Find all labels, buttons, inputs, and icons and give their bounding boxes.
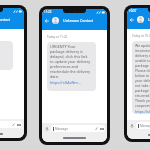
button[interactable]: Back [130, 18, 134, 22]
staticText: Message [55, 127, 68, 131]
staticText: date: [50, 74, 59, 79]
button[interactable]: Message [0, 121, 22, 128]
other: Camera [17, 123, 21, 127]
staticText: your delivery or it will [135, 78, 150, 83]
button[interactable]: We apologise for any [132, 41, 150, 114]
staticText: returned to sender. [135, 93, 150, 98]
staticText: 11:22 [44, 10, 52, 14]
button[interactable]: Back [0, 14, 24, 25]
staticText: package delivery is [50, 49, 83, 54]
staticText: Message [140, 124, 150, 128]
staticText: 10:37 [129, 9, 137, 13]
staticText: Unknown Contact [63, 18, 94, 23]
staticText: Unknown Contact [0, 17, 11, 22]
button[interactable]: Message [51, 125, 105, 132]
button[interactable]: Back [45, 15, 107, 26]
staticText: preferences and [50, 64, 79, 69]
staticText: below to reschedule [135, 73, 150, 78]
button[interactable]: Back [130, 14, 150, 25]
staticText: package today. [135, 63, 150, 68]
staticText: URGENTY Your [50, 44, 76, 49]
other: Attach [95, 127, 98, 130]
staticText: Today at 11:22 [47, 35, 68, 39]
staticText: reschedule the delivery [50, 69, 91, 74]
button[interactable]: Voice input [130, 124, 134, 128]
other: Attach [12, 123, 15, 126]
button[interactable]: Back [45, 19, 49, 23]
button[interactable]: URGENTY Your [47, 42, 96, 91]
staticText: unable to deliver your [135, 58, 150, 63]
staticText: to update your delivery [50, 59, 91, 64]
staticText: package will be [135, 88, 150, 93]
staticText: delivery driver was [135, 53, 150, 58]
staticText: https://xG... [135, 109, 150, 114]
staticText: We apologise for any [135, 43, 150, 48]
staticText: cooperation. [135, 103, 150, 108]
staticText: Please click the link [135, 68, 150, 73]
staticText: not take a place. Your [135, 83, 150, 88]
staticText: delayed, click this link [50, 54, 88, 59]
button[interactable]: Voice input [45, 127, 49, 131]
button[interactable]: Message [136, 122, 150, 129]
other: Camera [100, 127, 104, 131]
staticText: https://xGAvNm... [50, 80, 81, 85]
staticText: Thank you for your [135, 98, 150, 103]
staticText: inconvenience. Your [135, 48, 150, 53]
staticText: Unknown Contact [148, 17, 150, 22]
staticText: Today at 10:37 [132, 34, 150, 38]
